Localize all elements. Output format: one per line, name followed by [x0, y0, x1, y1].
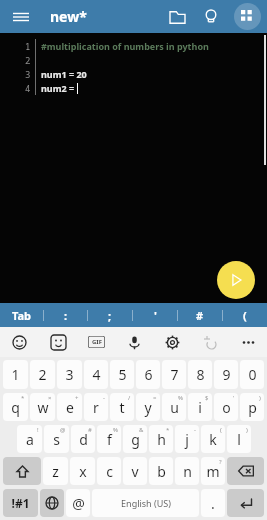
- button[interactable]: n: [175, 457, 199, 485]
- staticText: s: [53, 430, 60, 449]
- button[interactable]: Open file: [159, 0, 195, 33]
- button[interactable]: a: [17, 425, 42, 453]
- button[interactable]: 2: [30, 360, 55, 389]
- button[interactable]: 4: [84, 360, 108, 389]
- staticText: 0: [248, 365, 257, 384]
- staticText: m: [206, 462, 220, 481]
- button[interactable]: e: [57, 393, 82, 421]
- staticText: 1: [11, 365, 20, 384]
- button[interactable]: 8: [188, 360, 212, 389]
- staticText: .: [211, 494, 215, 513]
- button[interactable]: ': [133, 303, 177, 327]
- staticText: 9: [222, 365, 231, 384]
- staticText: r: [93, 398, 99, 417]
- staticText: GIF: [92, 338, 102, 346]
- button[interactable]: Tab: [0, 303, 43, 327]
- staticText: v: [131, 462, 139, 481]
- button[interactable]: 1: [3, 360, 28, 389]
- button[interactable]: k: [201, 425, 225, 453]
- button[interactable]: Enter: [227, 489, 264, 517]
- button[interactable]: Shift: [3, 457, 41, 485]
- button[interactable]: More tools: [227, 0, 267, 33]
- staticText: ×: [48, 394, 52, 402]
- button[interactable]: Emoji: [0, 327, 39, 357]
- button[interactable]: q: [3, 393, 28, 421]
- button[interactable]: b: [149, 457, 173, 485]
- staticText: -: [194, 426, 196, 434]
- button[interactable]: Voice input: [115, 327, 153, 357]
- staticText: 1: [25, 40, 31, 52]
- staticText: ': [154, 308, 157, 323]
- staticText: q: [11, 398, 20, 417]
- button[interactable]: w: [30, 393, 55, 421]
- staticText: num1 = 20: [41, 68, 87, 80]
- button[interactable]: Keyboard settings: [153, 327, 191, 357]
- staticText: 8: [196, 365, 205, 384]
- button[interactable]: 3: [57, 360, 82, 389]
- button[interactable]: o: [214, 393, 238, 421]
- button[interactable]: Translate: [191, 327, 229, 357]
- staticText: d: [79, 430, 88, 449]
- staticText: $: [205, 394, 209, 402]
- button[interactable]: f: [97, 425, 121, 453]
- staticText: ?: [219, 458, 222, 466]
- button[interactable]: u: [162, 393, 186, 421]
- button[interactable]: r: [84, 393, 108, 421]
- staticText: #: [88, 426, 92, 434]
- button[interactable]: 0: [240, 360, 264, 389]
- staticText: p: [248, 398, 257, 417]
- button[interactable]: l: [227, 425, 251, 453]
- staticText: 3: [65, 365, 74, 384]
- staticText: /: [128, 394, 131, 402]
- button[interactable]: t: [110, 393, 134, 421]
- button[interactable]: i: [188, 393, 212, 421]
- button[interactable]: x: [70, 457, 95, 485]
- button[interactable]: c: [97, 457, 121, 485]
- button[interactable]: Backspace: [227, 457, 264, 485]
- button[interactable]: p: [240, 393, 264, 421]
- button[interactable]: @: [66, 489, 90, 517]
- staticText: @: [72, 494, 85, 513]
- button[interactable]: :: [44, 303, 87, 327]
- button[interactable]: y: [136, 393, 160, 421]
- staticText: 6: [144, 365, 153, 384]
- button[interactable]: z: [43, 457, 68, 485]
- staticText: 5: [118, 365, 127, 384]
- button[interactable]: h: [149, 425, 173, 453]
- staticText: z: [52, 462, 59, 481]
- staticText: %: [113, 426, 118, 434]
- staticText: Tab: [12, 308, 32, 323]
- button[interactable]: More options: [229, 327, 267, 357]
- staticText: k: [209, 430, 217, 449]
- button[interactable]: 5: [110, 360, 134, 389]
- button[interactable]: (: [223, 303, 267, 327]
- staticText: -: [103, 394, 105, 402]
- button[interactable]: 6: [136, 360, 160, 389]
- button[interactable]: #: [178, 303, 222, 327]
- button[interactable]: d: [71, 425, 95, 453]
- button[interactable]: v: [123, 457, 147, 485]
- button[interactable]: Change language: [40, 489, 64, 517]
- staticText: :: [64, 308, 68, 323]
- button[interactable]: Menu: [0, 0, 42, 33]
- staticText: *: [166, 426, 170, 434]
- button[interactable]: English (US): [92, 489, 199, 517]
- staticText: (: [220, 426, 222, 434]
- button[interactable]: Hints: [195, 0, 227, 33]
- staticText: ): [259, 394, 261, 402]
- button[interactable]: !#1: [3, 489, 38, 517]
- button[interactable]: 9: [214, 360, 238, 389]
- staticText: &: [139, 426, 144, 434]
- button[interactable]: ;: [88, 303, 132, 327]
- staticText: 4: [25, 82, 31, 94]
- other: Backspace: [227, 457, 264, 485]
- button[interactable]: s: [44, 425, 69, 453]
- button[interactable]: Run: [217, 261, 255, 299]
- button[interactable]: .: [201, 489, 225, 517]
- button[interactable]: m: [201, 457, 225, 485]
- button[interactable]: GIF: [77, 327, 115, 357]
- button[interactable]: 7: [162, 360, 186, 389]
- button[interactable]: g: [123, 425, 147, 453]
- button[interactable]: j: [175, 425, 199, 453]
- button[interactable]: Stickers: [39, 327, 77, 357]
